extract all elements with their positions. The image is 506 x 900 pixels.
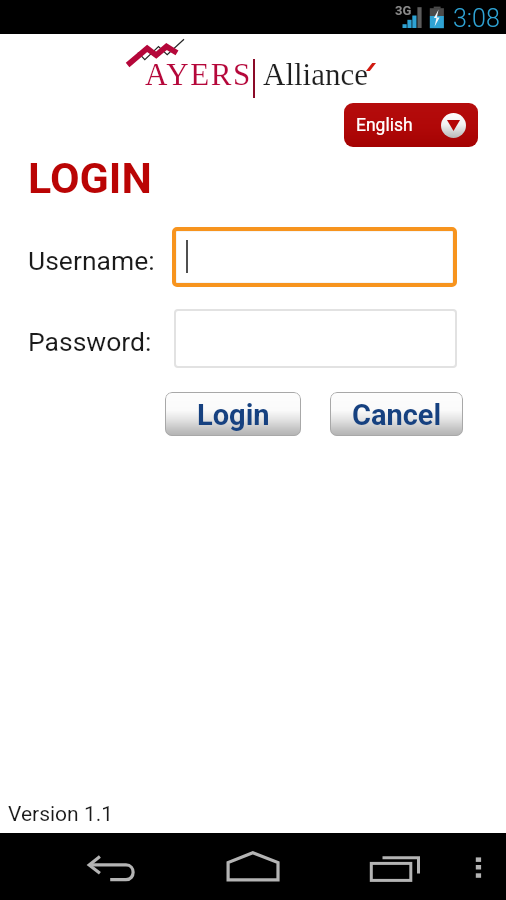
- staticText: 3:08: [453, 4, 500, 33]
- button[interactable]: Back: [70, 833, 150, 900]
- button[interactable]: [176, 231, 453, 283]
- button[interactable]: More options: [450, 833, 506, 900]
- staticText: English: [356, 115, 413, 136]
- button[interactable]: Recent apps: [358, 833, 432, 900]
- staticText: Cancel: [352, 398, 442, 432]
- staticText: Version 1.1: [8, 802, 114, 827]
- button[interactable]: Cancel: [330, 392, 463, 436]
- staticText: Password:: [28, 326, 152, 357]
- staticText: LOGIN: [28, 153, 152, 203]
- staticText: Username:: [28, 245, 155, 276]
- button[interactable]: English: [344, 103, 478, 147]
- staticText: Login: [197, 398, 270, 432]
- button[interactable]: Login: [165, 392, 301, 436]
- staticText: 3G: [395, 3, 412, 18]
- staticText: AYERS: [145, 57, 252, 91]
- button[interactable]: Home: [213, 833, 293, 900]
- button[interactable]: [174, 309, 457, 368]
- staticText: Alliance: [263, 57, 369, 91]
